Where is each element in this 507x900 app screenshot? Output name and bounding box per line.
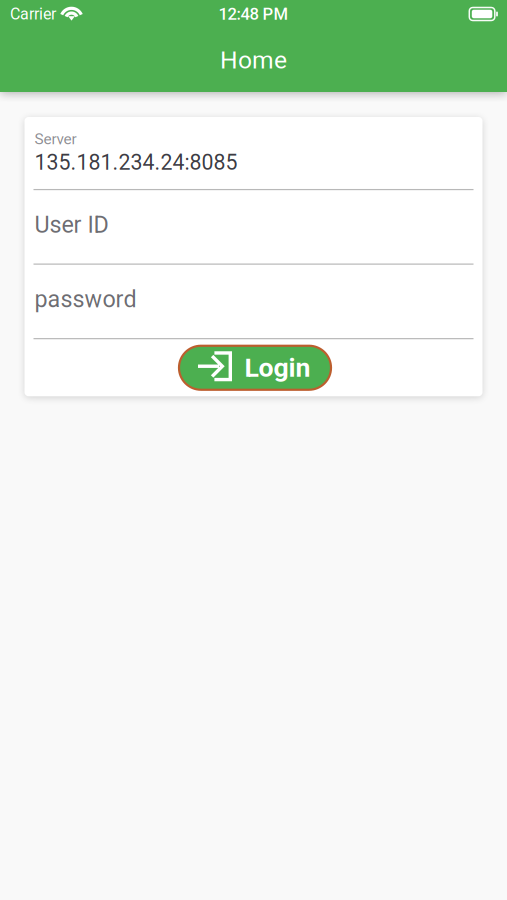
button[interactable]: Login — [179, 346, 331, 390]
staticText: Server — [34, 130, 76, 148]
button[interactable]: User ID — [33, 190, 473, 263]
staticText: User ID — [34, 211, 108, 238]
staticText: Login — [244, 352, 310, 383]
button[interactable]: Server — [33, 117, 473, 189]
staticText: Carrier — [10, 5, 56, 23]
staticText: Home — [220, 45, 287, 74]
staticText: password — [34, 286, 136, 313]
staticText: 12:48 PM — [218, 4, 288, 24]
staticText: 135.181.234.24:8085 — [34, 150, 237, 175]
button[interactable]: password — [33, 265, 473, 338]
